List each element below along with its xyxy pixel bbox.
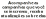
staticText: Acompanhe as campanhas que você se inscr… [0,0,45,18]
